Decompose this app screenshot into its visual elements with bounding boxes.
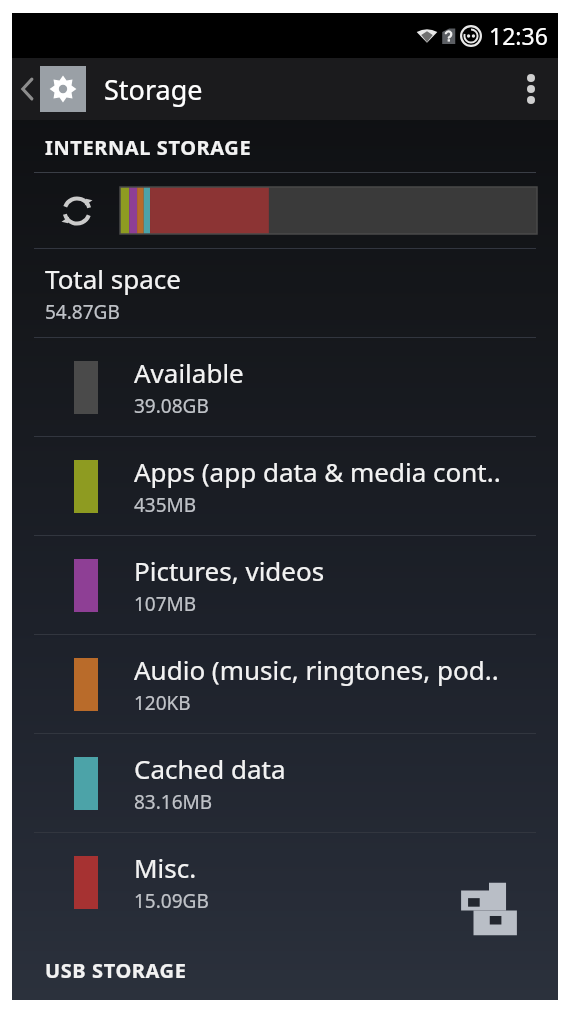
button[interactable]: Pictures, videos bbox=[12, 536, 558, 634]
staticText: Storage bbox=[104, 71, 203, 108]
button[interactable]: Audio (music, ringtones, pod.. bbox=[12, 635, 558, 733]
staticText: 83.16MB bbox=[134, 789, 213, 815]
staticText: 15.09GB bbox=[134, 888, 209, 914]
staticText: Available bbox=[134, 355, 244, 390]
staticText: Misc. bbox=[134, 850, 197, 885]
staticText: Audio (music, ringtones, pod.. bbox=[134, 652, 499, 687]
staticText: USB STORAGE bbox=[45, 957, 187, 984]
staticText: 54.87GB bbox=[45, 299, 120, 325]
button[interactable]: Apps (app data & media cont.. bbox=[12, 437, 558, 535]
button[interactable]: Total space bbox=[12, 249, 558, 337]
staticText: Cached data bbox=[134, 751, 286, 786]
button[interactable]: Misc. bbox=[12, 833, 558, 931]
staticText: 12:36 bbox=[489, 20, 548, 51]
staticText: 120KB bbox=[134, 690, 191, 716]
staticText: 435MB bbox=[134, 492, 197, 518]
staticText: INTERNAL STORAGE bbox=[45, 134, 252, 161]
staticText: Pictures, videos bbox=[134, 553, 325, 588]
staticText: 107MB bbox=[134, 591, 197, 617]
button[interactable]: Cached data bbox=[12, 734, 558, 832]
staticText: Apps (app data & media cont.. bbox=[134, 454, 501, 489]
button[interactable]: Refresh bbox=[56, 190, 98, 232]
button[interactable]: Available bbox=[12, 338, 558, 436]
button[interactable]: Navigate up bbox=[16, 62, 90, 116]
staticText: 39.08GB bbox=[134, 393, 209, 419]
button[interactable]: More options bbox=[504, 62, 558, 116]
staticText: Total space bbox=[45, 261, 181, 296]
